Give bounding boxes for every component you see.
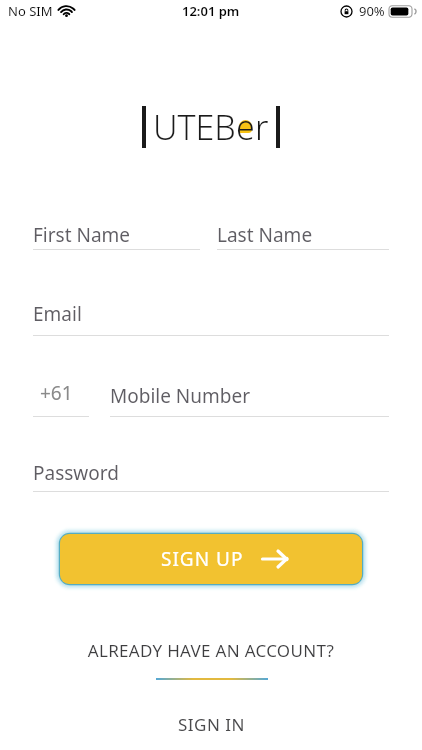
staticText: 12:01 pm xyxy=(182,2,240,20)
button[interactable]: SIGN IN xyxy=(0,713,422,750)
staticText: Password xyxy=(33,460,119,486)
staticText: First Name xyxy=(33,222,131,248)
staticText: +61 xyxy=(40,380,73,406)
staticText: SIGN UP xyxy=(161,546,244,572)
button[interactable]: Mobile Number xyxy=(110,380,389,417)
staticText: Last Name xyxy=(217,222,313,248)
button[interactable]: Last Name xyxy=(217,219,389,250)
button[interactable]: First Name xyxy=(33,219,200,250)
staticText: ALREADY HAVE AN ACCOUNT? xyxy=(0,639,422,662)
staticText: No SIM xyxy=(8,2,53,20)
button[interactable]: Password xyxy=(33,457,389,492)
staticText: Mobile Number xyxy=(110,383,251,409)
button[interactable]: SIGN UP xyxy=(60,534,362,584)
staticText: Email xyxy=(33,301,82,327)
staticText: SIGN IN xyxy=(178,713,245,736)
staticText: 90% xyxy=(359,2,385,20)
button[interactable]: +61 xyxy=(33,380,89,417)
staticText: UTEB xyxy=(153,104,236,150)
staticText: r xyxy=(255,104,269,150)
staticText: e xyxy=(236,104,255,150)
button[interactable]: Email xyxy=(33,298,389,336)
